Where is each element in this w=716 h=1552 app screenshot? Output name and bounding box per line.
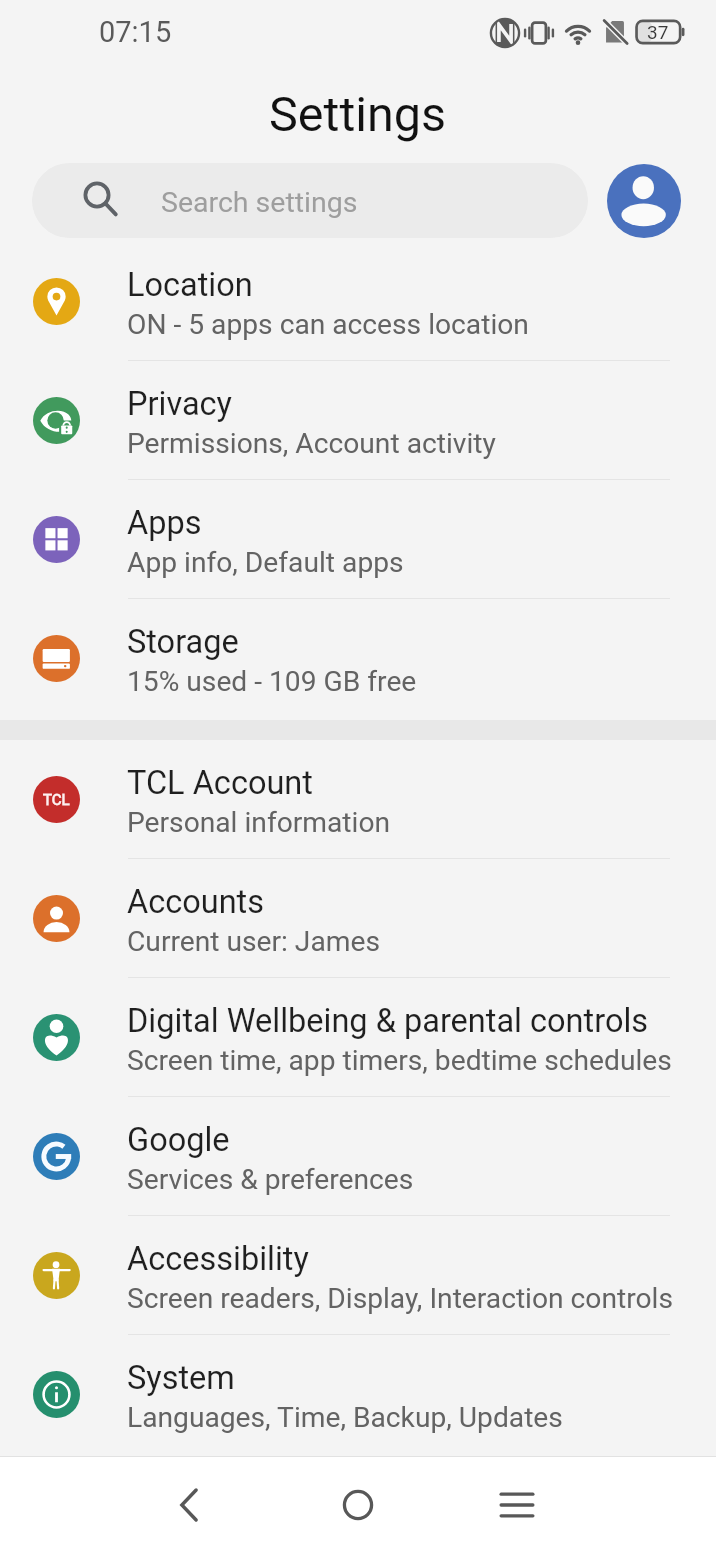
staticText: 07:15	[99, 15, 172, 49]
button[interactable]: Storage	[0, 599, 716, 718]
staticText: ON - 5 apps can access location	[127, 308, 529, 341]
staticText: Current user: James	[127, 925, 380, 958]
staticText: Screen time, app timers, bedtime schedul…	[127, 1044, 672, 1077]
button[interactable]: Location	[0, 242, 716, 361]
button[interactable]: Google	[0, 1097, 716, 1216]
staticText: Settings	[269, 86, 447, 143]
button[interactable]: Digital Wellbeing & parental controls	[0, 978, 716, 1097]
button[interactable]: Apps	[0, 480, 716, 599]
button[interactable]: Search settings	[32, 163, 588, 238]
button[interactable]: Account	[607, 164, 681, 238]
button[interactable]: System	[0, 1335, 716, 1454]
button[interactable]: Back	[144, 1457, 234, 1552]
staticText: Accounts	[127, 883, 265, 921]
staticText: 15% used - 109 GB free	[127, 665, 417, 698]
staticText: System	[127, 1359, 235, 1397]
staticText: Privacy	[127, 385, 232, 423]
button[interactable]: Accessibility	[0, 1216, 716, 1335]
staticText: Screen readers, Display, Interaction con…	[127, 1282, 673, 1315]
staticText: Languages, Time, Backup, Updates	[127, 1401, 563, 1434]
button[interactable]: TCL	[0, 740, 716, 859]
button[interactable]: Accounts	[0, 859, 716, 978]
staticText: Services & preferences	[127, 1163, 414, 1196]
staticText: Personal information	[127, 806, 391, 839]
staticText: Accessibility	[127, 1240, 309, 1278]
staticText: 37	[647, 21, 669, 43]
button[interactable]: Recent apps	[472, 1457, 562, 1552]
staticText: Location	[127, 266, 253, 304]
staticText: Apps	[127, 504, 202, 542]
staticText: TCL Account	[127, 764, 313, 802]
staticText: TCL	[43, 791, 70, 809]
staticText: Search settings	[161, 186, 358, 219]
staticText: App info, Default apps	[127, 546, 404, 579]
staticText: Storage	[127, 623, 239, 661]
button[interactable]: Privacy	[0, 361, 716, 480]
staticText: Google	[127, 1121, 230, 1159]
staticText: Permissions, Account activity	[127, 427, 496, 460]
staticText: Digital Wellbeing & parental controls	[127, 1002, 649, 1040]
button[interactable]: Home	[313, 1457, 403, 1552]
